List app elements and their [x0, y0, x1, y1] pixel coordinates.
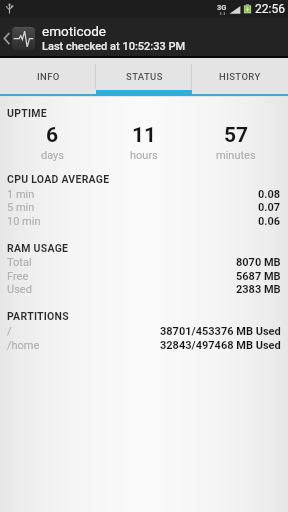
- staticText: HISTORY: [219, 71, 261, 82]
- staticText: days: [41, 149, 64, 162]
- staticText: 8070 MB: [236, 256, 281, 269]
- staticText: minutes: [216, 149, 256, 162]
- staticText: 10 min: [7, 215, 41, 228]
- staticText: 6: [46, 123, 59, 148]
- staticText: 0.08: [258, 188, 281, 201]
- button[interactable]: HISTORY: [192, 58, 288, 97]
- staticText: 22:56: [255, 2, 285, 16]
- staticText: 38701/453376 MB Used: [160, 325, 281, 338]
- staticText: PARTITIONS: [7, 310, 69, 322]
- staticText: 5687 MB: [236, 270, 281, 283]
- staticText: hours: [130, 149, 158, 162]
- staticText: 11: [132, 123, 157, 148]
- staticText: Free: [7, 270, 29, 283]
- button[interactable]: STATUS: [96, 58, 192, 97]
- staticText: emoticode: [42, 23, 106, 39]
- staticText: Last checked at 10:52:33 PM: [42, 40, 186, 53]
- staticText: 5 min: [7, 201, 35, 214]
- staticText: 2383 MB: [236, 283, 281, 296]
- staticText: 0.06: [258, 215, 281, 228]
- staticText: 0.07: [258, 201, 281, 214]
- button[interactable]: INFO: [0, 58, 96, 97]
- staticText: Total: [7, 256, 32, 269]
- staticText: /: [7, 325, 12, 338]
- staticText: STATUS: [126, 71, 163, 82]
- staticText: /home: [7, 339, 40, 352]
- staticText: 32843/497468 MB Used: [160, 339, 281, 352]
- staticText: INFO: [37, 71, 60, 82]
- staticText: UPTIME: [7, 107, 47, 119]
- staticText: 3G: [217, 3, 227, 12]
- staticText: Used: [7, 283, 32, 296]
- staticText: 57: [224, 123, 249, 148]
- button[interactable]: Navigate up: [0, 18, 37, 58]
- staticText: CPU LOAD AVERAGE: [7, 173, 110, 185]
- staticText: RAM USAGE: [7, 242, 69, 254]
- staticText: 1 min: [7, 188, 35, 201]
